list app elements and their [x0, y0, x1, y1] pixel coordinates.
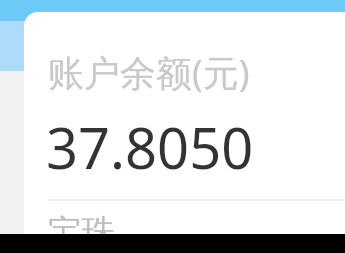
staticText: 账户余额(元)	[48, 48, 250, 97]
button[interactable]: 账户余额(元)	[24, 12, 345, 253]
staticText: 37.8050	[46, 109, 254, 185]
staticText: 宝珠	[48, 211, 116, 253]
button[interactable]: 宝珠	[48, 211, 345, 253]
